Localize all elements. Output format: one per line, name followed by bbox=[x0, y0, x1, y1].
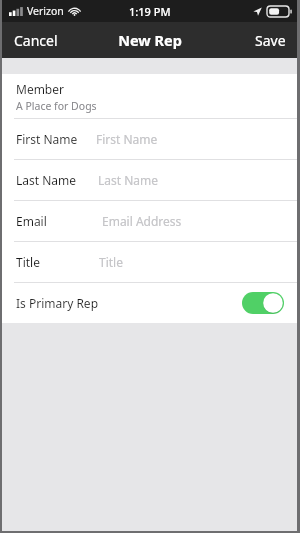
staticText: Email bbox=[16, 213, 47, 229]
button[interactable]: Last Name bbox=[0, 160, 300, 200]
staticText: New Rep bbox=[118, 30, 182, 50]
staticText: Title bbox=[16, 254, 40, 270]
staticText: Save bbox=[255, 31, 286, 50]
button[interactable]: Is Primary Rep bbox=[0, 283, 300, 323]
staticText: Last Name bbox=[98, 172, 159, 188]
button[interactable]: Member bbox=[0, 74, 300, 118]
button[interactable]: Is Primary Rep toggle, on bbox=[242, 292, 284, 314]
button[interactable]: Cancel bbox=[0, 22, 72, 58]
staticText: Is Primary Rep bbox=[16, 295, 99, 311]
staticText: Verizon bbox=[27, 4, 64, 18]
staticText: Member bbox=[16, 81, 64, 97]
staticText: Cancel bbox=[14, 31, 58, 50]
staticText: Title bbox=[99, 254, 123, 270]
staticText: 1:19 PM bbox=[129, 4, 171, 19]
staticText: First Name bbox=[96, 131, 158, 147]
button[interactable]: Email bbox=[0, 201, 300, 241]
staticText: A Place for Dogs bbox=[16, 99, 97, 113]
button[interactable]: Save bbox=[241, 22, 300, 58]
staticText: First Name bbox=[16, 131, 78, 147]
staticText: Last Name bbox=[16, 172, 77, 188]
button[interactable]: Title bbox=[0, 242, 300, 282]
button[interactable]: First Name bbox=[0, 119, 300, 159]
staticText: Email Address bbox=[102, 213, 182, 229]
